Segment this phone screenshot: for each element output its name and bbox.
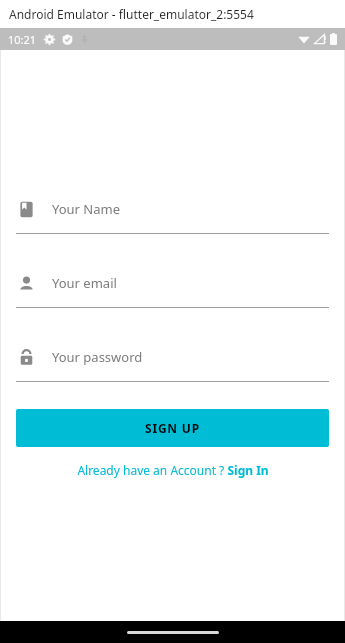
- staticText: SIGN UP: [145, 420, 200, 436]
- button[interactable]: Your Name: [0, 194, 345, 234]
- staticText: 10:21: [8, 32, 37, 47]
- button[interactable]: Already have an Account ? Sign In: [0, 462, 345, 478]
- staticText: Your Name: [52, 200, 121, 218]
- button[interactable]: Your email: [0, 268, 345, 308]
- staticText: Your password: [52, 348, 143, 366]
- staticText: Android Emulator - flutter_emulator_2:55…: [9, 6, 254, 22]
- button[interactable]: SIGN UP: [16, 409, 329, 447]
- staticText: Already have an Account ? Sign In: [77, 462, 269, 478]
- button[interactable]: Your password: [0, 342, 345, 382]
- staticText: Your email: [52, 274, 117, 292]
